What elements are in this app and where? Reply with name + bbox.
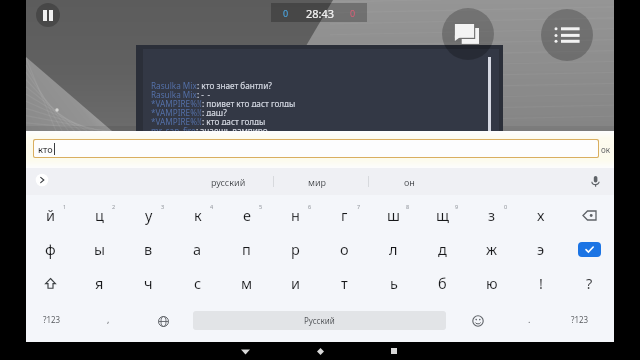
button[interactable]: Recents: [380, 342, 408, 360]
staticText: *VAMPIRE%!(: [151, 107, 202, 116]
staticText: 4: [210, 203, 214, 210]
button[interactable]: Home: [306, 342, 334, 360]
button[interactable]: в: [124, 232, 173, 266]
button[interactable]: и: [271, 266, 320, 300]
staticText: *VAMPIRE%!(: [151, 116, 202, 125]
staticText: п: [242, 239, 251, 259]
staticText: он: [404, 176, 415, 188]
button[interactable]: х: [516, 198, 565, 232]
staticText: в: [144, 239, 153, 259]
button[interactable]: ок: [598, 142, 612, 156]
button[interactable]: Chat: [442, 8, 494, 60]
button[interactable]: !: [516, 266, 565, 300]
staticText: Rasulka Mix: [151, 80, 197, 89]
button[interactable]: щ: [418, 198, 467, 232]
button[interactable]: й: [26, 198, 75, 232]
button[interactable]: п: [222, 232, 271, 266]
button[interactable]: Pause: [36, 3, 60, 27]
button[interactable]: т: [320, 266, 369, 300]
button[interactable]: ь: [369, 266, 418, 300]
other: Backspace: [582, 208, 597, 223]
staticText: к: [194, 205, 202, 225]
staticText: .: [528, 313, 531, 325]
button[interactable]: я: [75, 266, 124, 300]
button[interactable]: Voice input: [586, 172, 604, 190]
staticText: й: [46, 205, 56, 225]
button[interactable]: г: [320, 198, 369, 232]
button[interactable]: э: [516, 232, 565, 266]
staticText: ь: [390, 273, 398, 293]
button[interactable]: ?: [565, 266, 614, 300]
button[interactable]: к: [173, 198, 222, 232]
button[interactable]: е: [222, 198, 271, 232]
staticText: mr_san_fire: [151, 125, 196, 134]
staticText: ,: [107, 313, 110, 325]
button[interactable]: ж: [467, 232, 516, 266]
button[interactable]: 0: [271, 3, 367, 22]
button[interactable]: Backspace: [565, 198, 614, 232]
staticText: : кто даст голды: [202, 116, 266, 125]
staticText: : привет кто даст голды: [202, 98, 296, 107]
staticText: 2: [112, 203, 116, 210]
staticText: ы: [94, 239, 106, 259]
button[interactable]: л: [369, 232, 418, 266]
button[interactable]: русский: [194, 168, 262, 195]
staticText: 7: [357, 203, 361, 210]
staticText: : кто знает бантли?: [197, 80, 272, 89]
button[interactable]: з: [467, 198, 516, 232]
button[interactable]: кто: [34, 140, 598, 157]
button[interactable]: ф: [26, 232, 75, 266]
button[interactable]: Emoji: [466, 309, 490, 333]
staticText: ф: [45, 239, 56, 259]
button[interactable]: б: [418, 266, 467, 300]
button[interactable]: Hide keyboard: [231, 342, 259, 360]
button[interactable]: ч: [124, 266, 173, 300]
button[interactable]: Change language: [151, 309, 175, 333]
button[interactable]: м: [222, 266, 271, 300]
staticText: : даш?: [202, 107, 227, 116]
staticText: мир: [308, 176, 326, 188]
button[interactable]: с: [173, 266, 222, 300]
staticText: я: [95, 273, 104, 293]
button[interactable]: ш: [369, 198, 418, 232]
button[interactable]: ы: [75, 232, 124, 266]
staticText: : знаешь вампиро: [196, 125, 268, 134]
staticText: кто: [38, 143, 53, 155]
staticText: 1: [63, 203, 67, 210]
other: Enter: [578, 242, 601, 257]
button[interactable]: Playlist: [541, 9, 593, 61]
staticText: ?123: [43, 314, 61, 325]
button[interactable]: р: [271, 232, 320, 266]
staticText: Русский: [304, 315, 335, 326]
staticText: *VAMPIRE%!(: [151, 98, 202, 107]
staticText: о: [340, 239, 349, 259]
button[interactable]: More suggestions: [33, 171, 51, 189]
button[interactable]: Русский: [193, 311, 446, 330]
button[interactable]: он: [375, 168, 443, 195]
staticText: н: [291, 205, 300, 225]
button[interactable]: у: [124, 198, 173, 232]
button[interactable]: а: [173, 232, 222, 266]
button[interactable]: ,: [84, 302, 132, 336]
staticText: русский: [211, 176, 246, 188]
button[interactable]: ц: [75, 198, 124, 232]
button[interactable]: Shift: [26, 266, 75, 300]
button[interactable]: о: [320, 232, 369, 266]
button[interactable]: мир: [283, 168, 351, 195]
staticText: 3: [161, 203, 165, 210]
button[interactable]: ?123: [28, 302, 76, 336]
button[interactable]: н: [271, 198, 320, 232]
other: Shift: [44, 277, 57, 290]
staticText: з: [488, 205, 496, 225]
staticText: т: [341, 273, 348, 293]
staticText: 0: [504, 203, 508, 210]
button[interactable]: д: [418, 232, 467, 266]
button[interactable]: ?123: [556, 302, 604, 336]
staticText: ок: [601, 144, 610, 155]
staticText: ж: [486, 239, 498, 259]
button[interactable]: Enter: [565, 232, 614, 266]
staticText: и: [291, 273, 301, 293]
button[interactable]: ю: [467, 266, 516, 300]
staticText: р: [291, 239, 300, 259]
